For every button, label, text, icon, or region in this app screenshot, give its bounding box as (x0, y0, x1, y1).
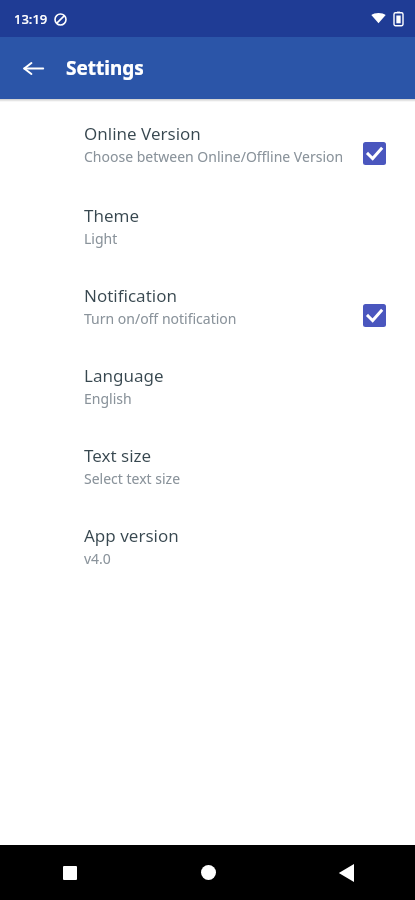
button[interactable]: Theme (0, 204, 415, 248)
button[interactable]: Recent apps (0, 845, 139, 900)
staticText: Choose between Online/Offline Version (84, 147, 344, 166)
button[interactable]: Back (14, 49, 52, 87)
staticText: Turn on/off notification (84, 309, 237, 328)
staticText: Language (84, 364, 164, 387)
button[interactable]: Language (0, 364, 415, 408)
button[interactable]: Notification toggle (359, 300, 389, 330)
button[interactable]: Notification (0, 284, 415, 328)
button[interactable]: Online Version (0, 122, 415, 166)
staticText: Light (84, 229, 118, 248)
staticText: Select text size (84, 469, 181, 488)
staticText: Online Version (84, 122, 201, 145)
staticText: 13:19 (14, 10, 48, 28)
button[interactable]: Text size (0, 444, 415, 488)
staticText: App version (84, 524, 179, 547)
button[interactable]: App version (0, 524, 415, 568)
staticText: v4.0 (84, 549, 111, 568)
staticText: English (84, 389, 132, 408)
button[interactable]: Home (139, 845, 277, 900)
button[interactable]: Online Version toggle (359, 138, 389, 168)
staticText: Settings (66, 55, 144, 81)
staticText: Theme (84, 204, 140, 227)
staticText: Text size (84, 444, 152, 467)
button[interactable]: Back (277, 845, 415, 900)
staticText: Notification (84, 284, 177, 307)
